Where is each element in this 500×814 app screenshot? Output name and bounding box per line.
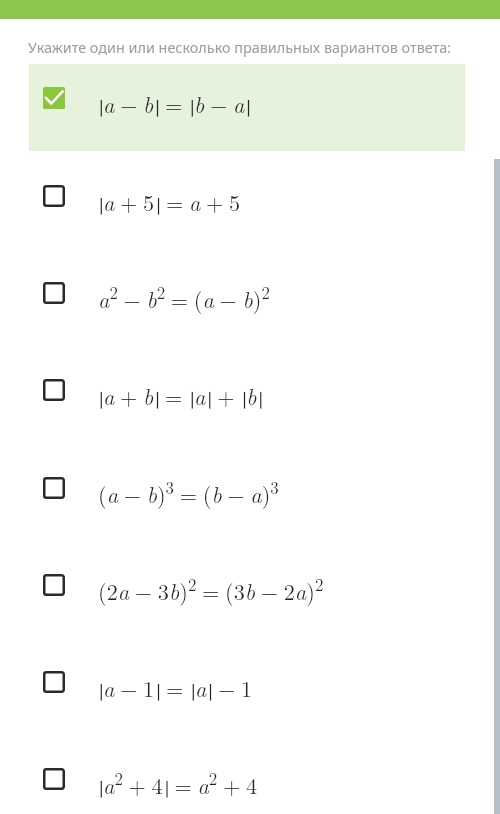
button[interactable]: ∣a2 + 4∣ = a2 + 4 (0, 732, 500, 814)
button[interactable]: ∣a + b∣ = ∣a∣ + ∣b∣ (0, 343, 500, 437)
button[interactable]: (2a − 3b)2 = (3b − 2a)2 (0, 538, 500, 632)
button[interactable]: ∣a − b∣ = ∣b − a∣ (29, 64, 465, 151)
button[interactable]: ∣a − 1∣ = ∣a∣ − 1 (0, 635, 500, 729)
staticText: ∣a − b∣ = ∣b − a∣ (97, 88, 251, 120)
staticText: ∣a + b∣ = ∣a∣ + ∣b∣ (97, 380, 263, 412)
staticText: (2a − 3b)2 = (3b − 2a)2 (98, 572, 324, 606)
staticText: ∣a + 5∣ = a + 5 (97, 186, 241, 218)
staticText: ∣a2 + 4∣ = a2 + 4 (97, 766, 258, 800)
staticText: ∣a − 1∣ = ∣a∣ − 1 (97, 672, 253, 704)
button[interactable]: ∣a + 5∣ = a + 5 (0, 149, 500, 243)
button[interactable]: (a − b)3 = (b − a)3 (0, 441, 500, 535)
staticText: (a − b)3 = (b − a)3 (98, 475, 279, 509)
staticText: a2 − b2 = (a − b)2 (98, 280, 270, 314)
staticText: Укажите один или несколько правильных ва… (28, 38, 452, 58)
button[interactable]: a2 − b2 = (a − b)2 (0, 246, 500, 340)
